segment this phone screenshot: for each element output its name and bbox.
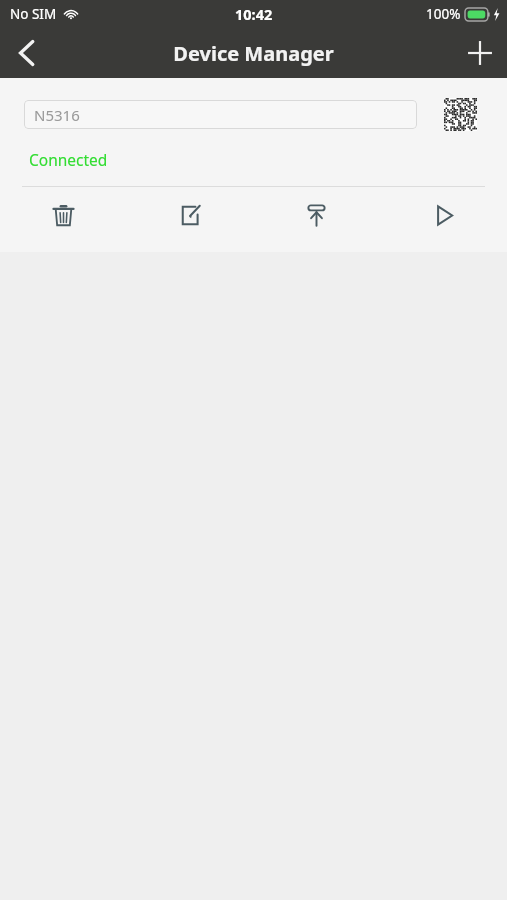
staticText: Device Manager [173, 40, 334, 67]
staticText: Connected [29, 149, 108, 170]
button[interactable]: Back [0, 28, 52, 78]
button[interactable]: QR code [443, 97, 478, 132]
button[interactable]: N5316 [24, 100, 417, 129]
button[interactable]: Upload [253, 187, 380, 243]
button[interactable]: Start [380, 187, 507, 243]
staticText: 10:42 [235, 4, 273, 24]
staticText: 100% [426, 5, 461, 23]
button[interactable]: Edit [126, 187, 253, 243]
staticText: No SIM [10, 5, 57, 23]
staticText: N5316 [34, 105, 80, 125]
button[interactable]: Add device [453, 28, 507, 78]
button[interactable]: Delete [0, 187, 126, 243]
